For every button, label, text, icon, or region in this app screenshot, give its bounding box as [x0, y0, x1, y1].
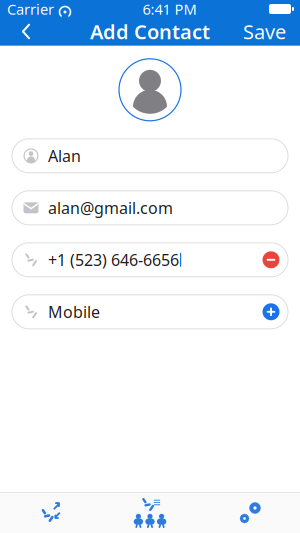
staticText: Save: [243, 18, 286, 45]
staticText: 6:41 PM: [142, 0, 196, 19]
staticText: Add Contact: [90, 18, 210, 45]
button[interactable]: Settings: [200, 493, 300, 533]
button[interactable]: Call history: [0, 493, 100, 533]
staticText: +1 (523) 646-6656: [48, 249, 179, 270]
staticText: Mobile: [48, 301, 100, 322]
staticText: alan@gmail.com: [48, 197, 173, 218]
button[interactable]: Back: [4, 16, 48, 46]
button[interactable]: Contacts: [100, 493, 200, 533]
button[interactable]: Mobile: [12, 295, 288, 329]
button[interactable]: Alan: [12, 139, 288, 173]
button[interactable]: Change contact photo: [119, 59, 181, 121]
button[interactable]: alan@gmail.com: [12, 191, 288, 225]
staticText: Carrier: [7, 0, 54, 19]
button[interactable]: +1 (523) 646-6656: [12, 243, 288, 277]
staticText: Alan: [48, 145, 81, 166]
button[interactable]: Save: [233, 16, 296, 46]
